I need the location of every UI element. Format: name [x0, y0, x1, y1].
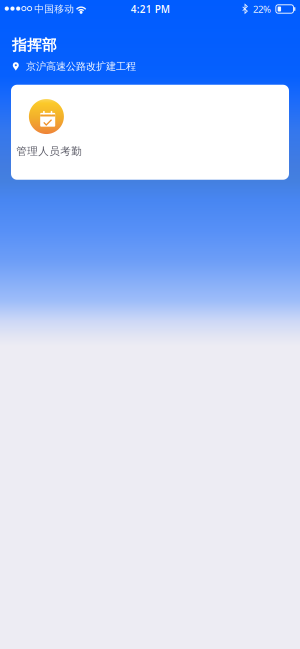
button[interactable]: 管理人员考勤: [11, 85, 289, 180]
staticText: 管理人员考勤: [16, 144, 82, 158]
staticText: 京沪高速公路改扩建工程: [26, 60, 136, 73]
staticText: 4:21 PM: [131, 2, 170, 16]
staticText: 22%: [253, 2, 271, 16]
staticText: 中国移动: [34, 3, 74, 15]
staticText: 指挥部: [12, 36, 57, 54]
